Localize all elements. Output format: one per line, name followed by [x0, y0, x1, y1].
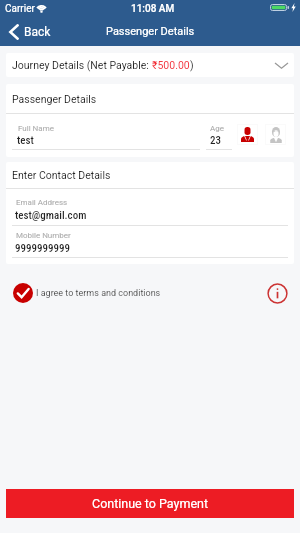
staticText: Full Name	[18, 124, 54, 133]
staticText: Email Address	[16, 198, 68, 207]
staticText: 9999999999	[15, 242, 70, 255]
button[interactable]: Journey Details (Net Payable:	[6, 53, 294, 77]
staticText: 23	[210, 134, 221, 147]
staticText: Enter Contact Details	[12, 169, 111, 181]
staticText: Back	[24, 25, 51, 39]
staticText: )	[190, 59, 194, 71]
staticText: 11:08 AM	[131, 3, 175, 15]
staticText: I agree to terms and conditions	[36, 288, 161, 299]
staticText: Passenger Details	[12, 93, 97, 105]
staticText: Age	[210, 124, 224, 133]
button[interactable]: Information	[266, 282, 288, 304]
button[interactable]: Back	[0, 20, 59, 44]
button[interactable]: I agree to terms and conditions	[13, 283, 161, 303]
staticText: test	[17, 134, 34, 147]
staticText: ₹500.00	[152, 59, 190, 71]
staticText: Passenger Details	[106, 25, 195, 38]
button[interactable]: Male passenger	[236, 114, 260, 157]
staticText: Continue to Payment	[92, 496, 209, 511]
staticText: Journey Details (Net Payable:	[12, 59, 152, 71]
button[interactable]: Continue to Payment	[6, 489, 294, 518]
staticText: Mobile Number	[16, 231, 71, 240]
staticText: test@gmail.com	[15, 209, 87, 222]
button[interactable]: Female passenger	[264, 114, 288, 157]
staticText: Carrier	[5, 3, 35, 15]
